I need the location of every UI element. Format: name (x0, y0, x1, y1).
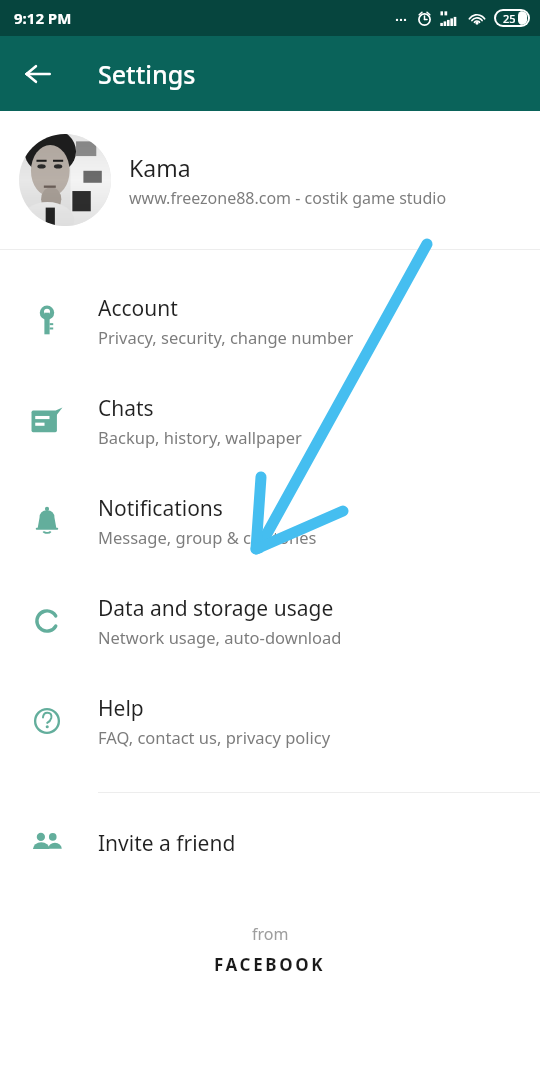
button[interactable]: Notifications (0, 471, 540, 571)
staticText: www.freezone88.com - costik game studio (129, 187, 447, 209)
staticText: Help (98, 694, 144, 723)
staticText: Chats (98, 394, 154, 423)
staticText: Invite a friend (98, 829, 236, 858)
staticText: Network usage, auto-download (98, 626, 342, 648)
button[interactable]: Invite a friend (0, 793, 540, 893)
button[interactable]: Kama (0, 111, 540, 249)
staticText: Notifications (98, 494, 223, 523)
button[interactable]: Chats (0, 371, 540, 471)
staticText: FAQ, contact us, privacy policy (98, 726, 331, 748)
staticText: Data and storage usage (98, 594, 334, 623)
button[interactable]: Account (0, 271, 540, 371)
staticText: Kama (129, 152, 191, 183)
staticText: Settings (98, 57, 196, 91)
staticText: 9:12 PM (14, 8, 72, 28)
staticText: Message, group & call tones (98, 526, 317, 548)
staticText: Account (98, 294, 178, 323)
staticText: FACEBOOK (214, 953, 326, 976)
staticText: Backup, history, wallpaper (98, 426, 302, 448)
button[interactable]: Back (10, 46, 66, 102)
staticText: from (252, 923, 289, 945)
button[interactable]: Help (0, 671, 540, 771)
button[interactable]: Data and storage usage (0, 571, 540, 671)
staticText: 25 (503, 11, 516, 25)
staticText: Privacy, security, change number (98, 326, 354, 348)
